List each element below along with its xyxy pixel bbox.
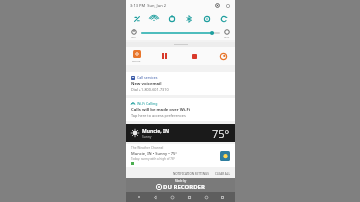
staticText: Muncie, IN xyxy=(142,128,170,135)
button[interactable]: Muncie, IN xyxy=(126,124,235,142)
button[interactable]: CLEAR ALL xyxy=(215,172,230,176)
staticText: Made by xyxy=(175,179,187,183)
staticText: Call services xyxy=(137,75,158,80)
staticText: Calls will be made over Wi-Fi xyxy=(131,107,190,113)
button[interactable]: Settings xyxy=(214,2,221,9)
staticText: Today: sunny with a high of 78° xyxy=(131,157,175,161)
staticText: The Weather Channel xyxy=(131,146,164,150)
button[interactable]: NOTIFICATION SETTINGS xyxy=(173,172,209,176)
staticText: NOTIFICATION SETTINGS xyxy=(173,172,209,176)
button[interactable]: Pause xyxy=(158,50,170,62)
staticText: 75° xyxy=(212,126,230,141)
button[interactable]: Screenshot xyxy=(202,193,210,201)
button[interactable]: Auto rotate xyxy=(217,12,231,26)
button[interactable]: Home xyxy=(168,193,176,201)
button[interactable]: Recents xyxy=(185,193,193,201)
button[interactable]: Record xyxy=(132,50,141,62)
button[interactable]: Back xyxy=(151,193,159,201)
button[interactable]: More xyxy=(218,193,226,201)
button[interactable]: Power xyxy=(224,2,231,9)
button[interactable]: Bluetooth xyxy=(182,12,196,26)
staticText: 3:13 PM Sun, Jun 2 xyxy=(130,3,167,8)
button[interactable]: Menu xyxy=(135,193,143,201)
staticText: Dial +1-800-601-7310 xyxy=(131,87,169,92)
button[interactable]: Brightness xyxy=(210,31,214,35)
staticText: DU RECORDER xyxy=(163,183,205,191)
button[interactable]: Location xyxy=(165,12,179,26)
button[interactable]: Stop xyxy=(188,50,200,62)
button[interactable]: The Weather Channel xyxy=(126,144,235,167)
staticText: Wi-Fi Calling xyxy=(137,101,158,106)
staticText: Record xyxy=(132,59,141,62)
staticText: MAX xyxy=(224,35,230,38)
button[interactable]: Call services xyxy=(126,72,235,95)
staticText: CLEAR ALL xyxy=(215,172,230,176)
staticText: Sunny xyxy=(142,135,152,139)
button[interactable]: Silent mode xyxy=(130,12,144,26)
staticText: New voicemail xyxy=(131,81,162,87)
button[interactable]: Tools xyxy=(217,50,229,62)
staticText: Tap here to access preferences xyxy=(131,113,186,118)
button[interactable]: Wi-Fi Calling xyxy=(126,98,235,121)
staticText: Muncie, IN • Sunny • 75° xyxy=(131,151,177,156)
button[interactable]: Airplane mode xyxy=(200,12,214,26)
staticText: MIN xyxy=(131,35,137,38)
button[interactable]: Wi-Fi xyxy=(147,12,161,26)
